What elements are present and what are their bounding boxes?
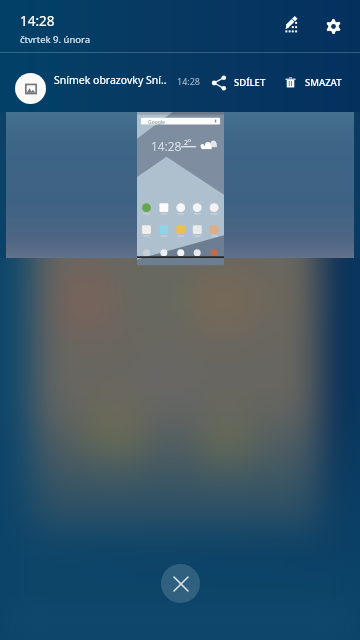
staticText: Snímek obrazovky Sní..	[54, 73, 167, 87]
button[interactable]: Snímek obrazovky Sní..	[0, 53, 360, 112]
staticText: čtvrtek 9. února	[20, 33, 91, 46]
staticText: Google	[148, 119, 165, 126]
button[interactable]: SMAZAT	[284, 68, 342, 97]
staticText: SMAZAT	[305, 76, 342, 89]
button[interactable]: Screenshot preview	[6, 112, 354, 258]
button[interactable]: Edit screenshot	[278, 11, 304, 37]
button[interactable]: Settings	[320, 13, 346, 39]
staticText: 14:28	[177, 75, 201, 87]
button[interactable]: Close	[161, 564, 200, 603]
staticText: SDÍLET	[234, 76, 266, 89]
staticText: 14:28	[151, 138, 182, 154]
staticText: 2°	[184, 138, 191, 148]
button[interactable]: SDÍLET	[211, 68, 266, 97]
staticText: 14:28	[20, 12, 55, 30]
